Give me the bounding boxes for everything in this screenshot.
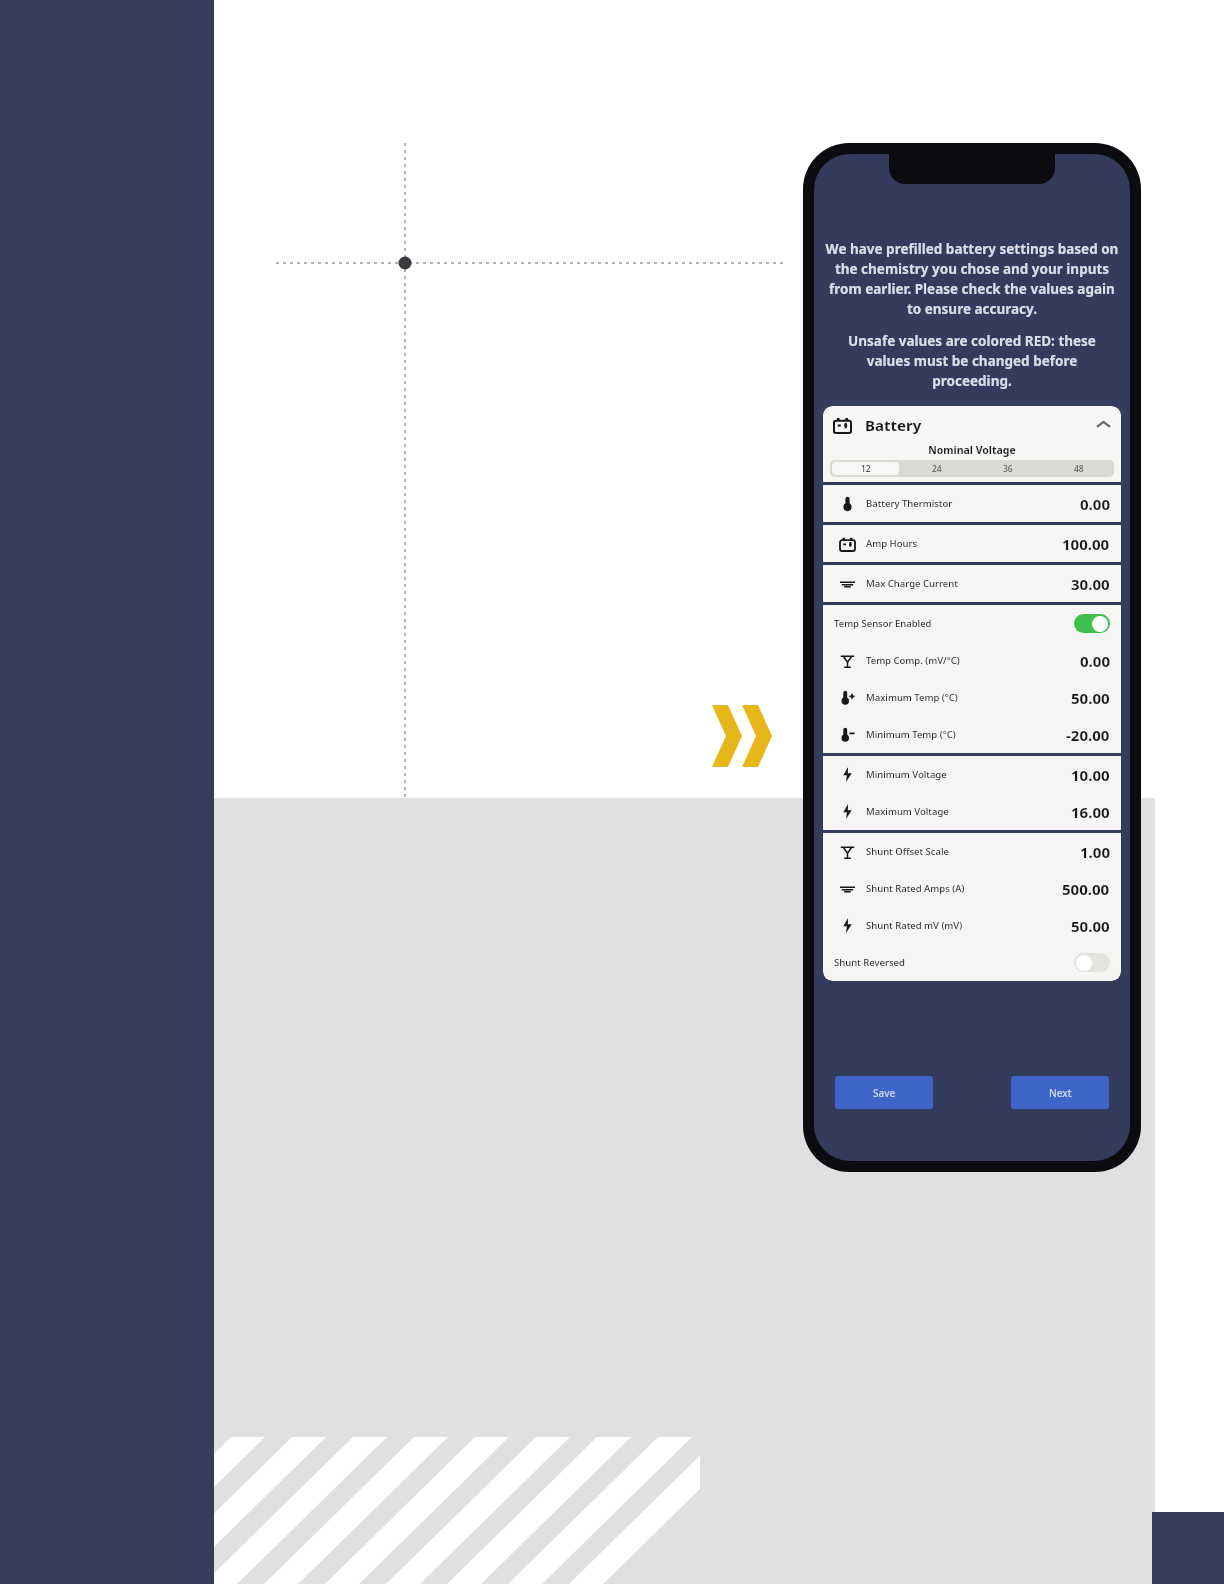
button[interactable]: Next bbox=[1011, 1076, 1109, 1109]
staticText: We have prefilled battery settings based… bbox=[824, 240, 1120, 318]
staticText: 12 bbox=[861, 463, 871, 475]
staticText: 16.00 bbox=[1071, 802, 1110, 822]
staticText: 48 bbox=[1074, 463, 1084, 475]
staticText: Save bbox=[873, 1086, 896, 1100]
button[interactable]: Maximum Temp (°C) bbox=[823, 679, 1121, 716]
staticText: Minimum Voltage bbox=[866, 768, 947, 781]
staticText: 24 bbox=[932, 463, 942, 475]
button[interactable]: Shunt Offset Scale bbox=[823, 833, 1121, 870]
staticText: Temp Comp. (mV/°C) bbox=[866, 654, 960, 667]
staticText: Shunt Reversed bbox=[834, 956, 905, 969]
staticText: 50.00 bbox=[1071, 688, 1110, 708]
button[interactable]: 48 bbox=[1045, 462, 1112, 475]
button[interactable]: Shunt Rated mV (mV) bbox=[823, 907, 1121, 944]
staticText: 10.00 bbox=[1071, 765, 1110, 785]
button[interactable]: Minimum Voltage bbox=[823, 756, 1121, 793]
staticText: 500.00 bbox=[1062, 879, 1110, 899]
button[interactable]: Shunt Reversed bbox=[823, 944, 1121, 981]
staticText: Shunt Rated Amps (A) bbox=[866, 882, 965, 895]
staticText: Battery Thermistor bbox=[866, 497, 953, 510]
button[interactable]: Battery bbox=[823, 406, 1121, 482]
button[interactable]: Battery Thermistor bbox=[823, 485, 1121, 522]
staticText: 100.00 bbox=[1062, 534, 1110, 554]
staticText: 0.00 bbox=[1080, 494, 1110, 514]
button[interactable] bbox=[1074, 953, 1110, 972]
button[interactable]: Maximum Voltage bbox=[823, 793, 1121, 830]
staticText: 0.00 bbox=[1080, 651, 1110, 671]
staticText: Shunt Rated mV (mV) bbox=[866, 919, 963, 932]
staticText: Maximum Temp (°C) bbox=[866, 691, 958, 704]
staticText: -20.00 bbox=[1066, 725, 1110, 745]
staticText: Nominal Voltage bbox=[823, 443, 1121, 457]
button[interactable]: 12 bbox=[832, 462, 899, 475]
staticText: Shunt Offset Scale bbox=[866, 845, 949, 858]
staticText: 36 bbox=[1003, 463, 1013, 475]
button[interactable]: Save bbox=[835, 1076, 933, 1109]
button[interactable]: Temp Sensor Enabled bbox=[823, 605, 1121, 642]
button[interactable] bbox=[1074, 614, 1110, 633]
staticText: 50.00 bbox=[1071, 916, 1110, 936]
staticText: Temp Sensor Enabled bbox=[834, 617, 932, 630]
button[interactable]: 36 bbox=[974, 462, 1041, 475]
staticText: Unsafe values are colored RED: these val… bbox=[828, 332, 1116, 390]
button[interactable]: Temp Comp. (mV/°C) bbox=[823, 642, 1121, 679]
staticText: Max Charge Current bbox=[866, 577, 958, 590]
staticText: Next bbox=[1049, 1086, 1072, 1100]
button[interactable]: 24 bbox=[903, 462, 970, 475]
button[interactable]: Shunt Rated Amps (A) bbox=[823, 870, 1121, 907]
staticText: Minimum Temp (°C) bbox=[866, 728, 956, 741]
staticText: 30.00 bbox=[1071, 574, 1110, 594]
button[interactable]: Minimum Temp (°C) bbox=[823, 716, 1121, 753]
staticText: 1.00 bbox=[1080, 842, 1110, 862]
staticText: Maximum Voltage bbox=[866, 805, 949, 818]
button[interactable]: Amp Hours bbox=[823, 525, 1121, 562]
button[interactable]: Max Charge Current bbox=[823, 565, 1121, 602]
staticText: Battery bbox=[865, 415, 922, 435]
staticText: Amp Hours bbox=[866, 537, 918, 550]
